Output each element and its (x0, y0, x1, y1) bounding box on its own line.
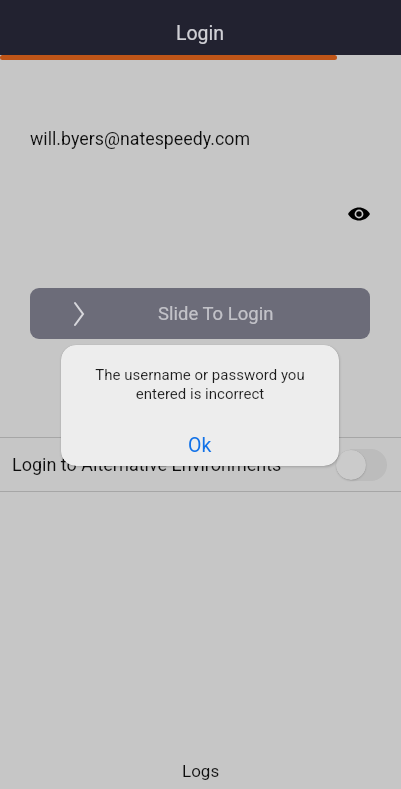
button[interactable]: will.byers@natespeedy.com (30, 112, 340, 148)
button[interactable]: Login to Alternative Environments (0, 438, 401, 491)
staticText: Logs (182, 761, 220, 781)
button[interactable]: Show password (342, 197, 375, 230)
staticText: Login to Alternative Environments (12, 454, 282, 475)
staticText: Slide To Login (158, 303, 274, 325)
staticText: will.byers@natespeedy.com (30, 128, 251, 149)
staticText: Ok (188, 434, 212, 457)
button[interactable]: Slide To Login (30, 288, 370, 339)
button[interactable]: Toggle alternative environments (336, 449, 388, 481)
staticText: The username or password you entered is … (61, 366, 339, 402)
staticText: Login (176, 22, 225, 45)
button[interactable]: Logs (0, 750, 401, 789)
button[interactable]: Ok (61, 426, 339, 465)
